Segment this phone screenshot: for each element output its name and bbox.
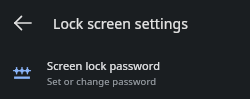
staticText: Lock screen settings [53, 14, 188, 33]
button[interactable]: Back [8, 8, 38, 38]
staticText: Screen lock password [47, 58, 161, 73]
button[interactable]: Screen lock password [0, 46, 250, 99]
staticText: Set or change password [47, 75, 157, 88]
